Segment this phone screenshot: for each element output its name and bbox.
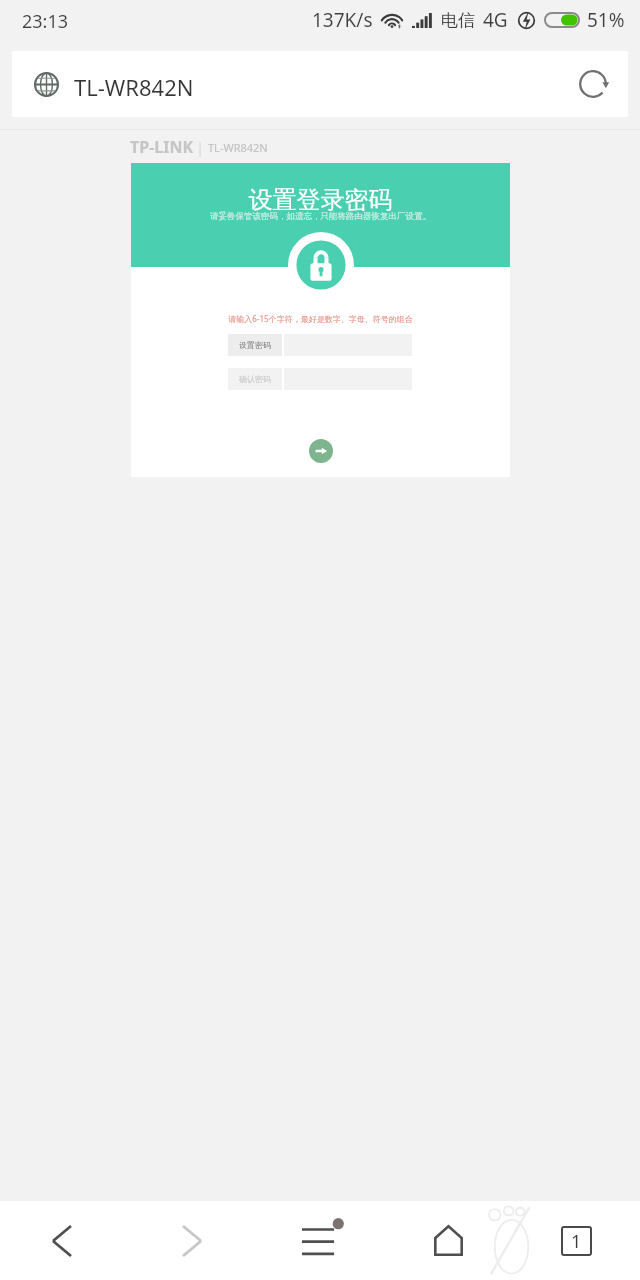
staticText: 23:13 — [22, 9, 69, 34]
staticText: 51% — [587, 7, 625, 33]
staticText: | — [196, 137, 205, 157]
staticText: 设置密码 — [239, 340, 271, 350]
button[interactable]: Menu — [290, 1201, 350, 1280]
staticText: 137K/s — [312, 7, 373, 33]
staticText: 电信 — [441, 10, 475, 31]
button[interactable]: Tabs — [546, 1201, 606, 1280]
button[interactable]: TL-WR842N — [12, 51, 628, 117]
button[interactable]: Private mode — [482, 1201, 542, 1280]
staticText: 4G — [483, 7, 508, 33]
button[interactable]: Home — [418, 1201, 478, 1280]
staticText: TL-WR842N — [74, 72, 194, 102]
staticText: 确认密码 — [239, 374, 271, 384]
button[interactable]: Next — [309, 439, 333, 463]
button[interactable]: Refresh — [571, 62, 615, 106]
staticText: 请妥善保管该密码，如遗忘，只能将路由器恢复出厂设置。 — [131, 211, 510, 222]
staticText: TL-WR842N — [208, 140, 268, 155]
staticText: 设置登录密码 — [131, 185, 510, 215]
staticText: TP-LINK — [130, 136, 194, 158]
button[interactable]: Back — [32, 1201, 92, 1280]
staticText: 1 — [571, 1229, 582, 1254]
button[interactable]: Forward — [162, 1201, 222, 1280]
staticText: 请输入6-15个字符，最好是数字、字母、符号的组合 — [131, 313, 510, 324]
